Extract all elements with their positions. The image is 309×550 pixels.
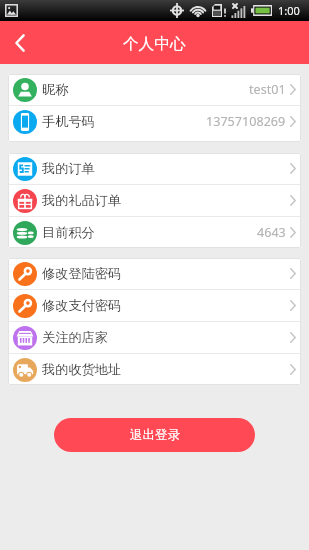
staticText: 目前积分 [42,224,95,241]
staticText: 13757108269 [206,113,286,130]
button[interactable]: 修改支付密码 [8,290,301,321]
staticText: 关注的店家 [42,329,108,346]
staticText: 我的礼品订单 [42,192,122,209]
button[interactable]: 修改登陆密码 [8,258,301,289]
staticText: 1:00 [278,3,300,18]
staticText: 我的订单 [42,160,95,177]
button[interactable]: 我的收货地址 [8,354,301,385]
staticText: test01 [249,81,286,98]
staticText: 昵称 [42,81,69,98]
button[interactable]: 昵称 [8,74,301,105]
button[interactable]: 手机号码 [8,106,301,137]
staticText: 退出登录 [130,427,180,443]
button[interactable]: 退出登录 [54,418,255,452]
staticText: 修改支付密码 [42,297,122,314]
button[interactable]: 我的订单 [8,153,301,184]
button[interactable]: Back [0,23,40,63]
button[interactable]: 目前积分 [8,217,301,248]
staticText: 手机号码 [42,113,95,130]
button[interactable]: 关注的店家 [8,322,301,353]
staticText: 4643 [257,224,286,241]
staticText: 个人中心 [123,34,186,54]
staticText: 我的收货地址 [42,361,122,378]
button[interactable]: 我的礼品订单 [8,185,301,216]
staticText: 修改登陆密码 [42,265,122,282]
